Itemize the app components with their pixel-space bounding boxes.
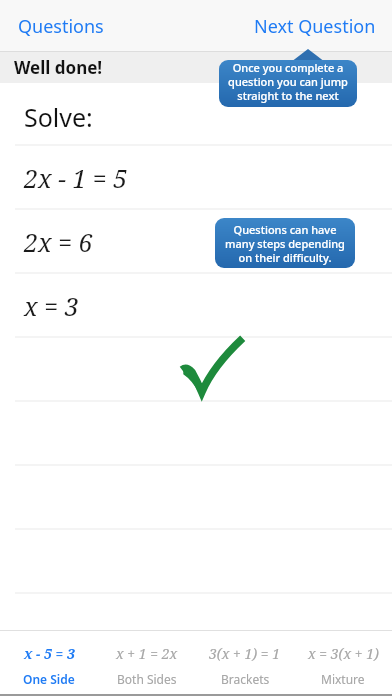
staticText: Solve: bbox=[24, 100, 93, 134]
staticText: Mixture bbox=[321, 671, 365, 687]
button[interactable]: x + 1 = 2x bbox=[98, 634, 196, 696]
staticText: Next Question bbox=[254, 14, 376, 39]
staticText: x + 1 = 2x bbox=[116, 644, 178, 663]
staticText: x − 5 = 3 bbox=[24, 644, 75, 663]
button[interactable]: x − 5 = 3 bbox=[0, 634, 98, 696]
button[interactable]: 3(x + 1) = 1 bbox=[196, 634, 294, 696]
staticText: 3(x + 1) = 1 bbox=[209, 644, 281, 663]
staticText: 2x = 6 bbox=[24, 225, 93, 259]
staticText: Once you complete a question you can jum… bbox=[225, 60, 351, 107]
staticText: 2x − 1 = 5 bbox=[24, 161, 128, 195]
staticText: x = 3 bbox=[24, 289, 79, 323]
button[interactable]: Questions bbox=[18, 14, 104, 39]
staticText: One Side bbox=[23, 671, 75, 687]
staticText: Questions bbox=[18, 14, 104, 39]
staticText: Well done! bbox=[14, 56, 103, 79]
staticText: Brackets bbox=[221, 671, 270, 687]
button[interactable]: Next Question bbox=[254, 14, 376, 39]
staticText: Questions can have many steps depending … bbox=[221, 222, 349, 265]
staticText: x = 3(x + 1) bbox=[308, 644, 379, 663]
button[interactable]: x = 3(x + 1) bbox=[294, 634, 392, 696]
staticText: Both Sides bbox=[117, 671, 177, 687]
